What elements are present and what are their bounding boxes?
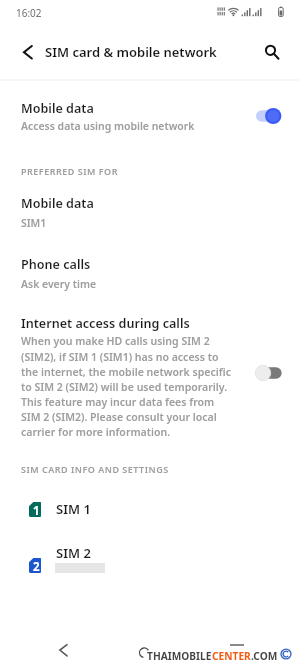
staticText: When you make HD calls using SIM 2 (SIM2… bbox=[21, 334, 233, 439]
staticText: SIM1 bbox=[21, 216, 47, 230]
staticText: Mobile data bbox=[21, 195, 94, 212]
staticText: Phone calls bbox=[21, 256, 91, 273]
staticText: SIM card & mobile network bbox=[45, 43, 217, 61]
staticText: SIM 1 bbox=[56, 500, 91, 518]
button[interactable]: Phone calls bbox=[0, 253, 300, 295]
staticText: SIM CARD INFO AND SETTINGS bbox=[21, 463, 169, 475]
staticText: Internet access during calls bbox=[21, 315, 190, 332]
button[interactable]: Mobile data, on bbox=[256, 103, 296, 129]
button[interactable]: 2 bbox=[0, 544, 300, 580]
staticText: Access data using mobile network bbox=[21, 119, 195, 133]
staticText: PREFERRED SIM FOR bbox=[21, 165, 118, 177]
button[interactable]: 1 bbox=[0, 494, 300, 528]
staticText: THAIMOBILE bbox=[147, 649, 212, 663]
button[interactable]: Mobile data bbox=[0, 192, 300, 234]
staticText: 16:02 bbox=[16, 6, 42, 20]
staticText: 2 bbox=[33, 559, 40, 574]
button[interactable]: Mobile data bbox=[0, 88, 300, 140]
button[interactable]: Navigate up bbox=[9, 32, 45, 68]
button[interactable]: Internet access during calls bbox=[0, 312, 300, 440]
staticText: SIM 2 bbox=[56, 544, 91, 562]
staticText: 1 bbox=[33, 503, 40, 518]
button[interactable]: Search bbox=[256, 32, 288, 64]
button[interactable]: Internet access during calls, off bbox=[256, 360, 296, 386]
staticText: .COM bbox=[251, 649, 278, 663]
staticText: CENTER bbox=[212, 649, 251, 663]
button[interactable]: Back bbox=[48, 638, 70, 660]
staticText: Mobile data bbox=[21, 100, 94, 117]
staticText: Ask every time bbox=[21, 277, 97, 291]
